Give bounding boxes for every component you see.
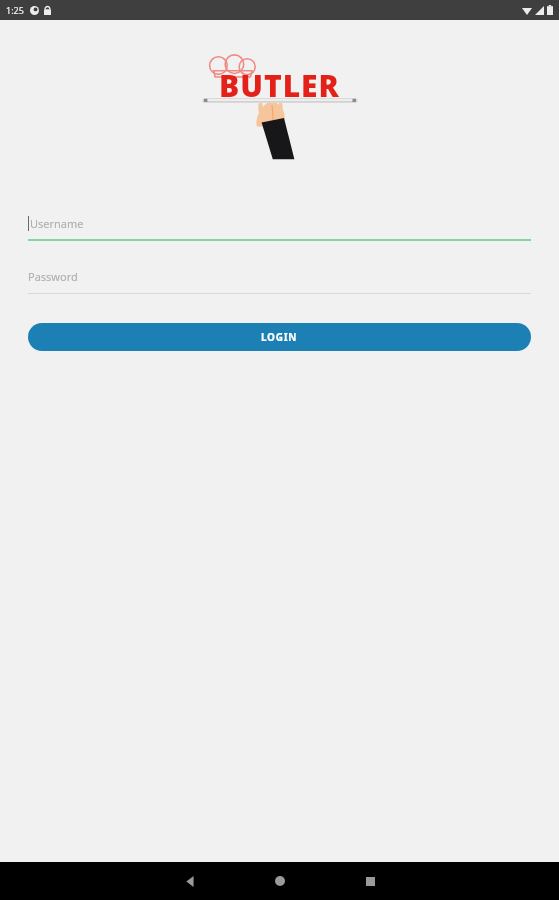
button[interactable]: Recent apps bbox=[341, 862, 399, 900]
button[interactable]: Password bbox=[28, 269, 531, 294]
staticText: Username bbox=[30, 216, 84, 231]
staticText: BUTLER bbox=[219, 65, 340, 106]
button[interactable]: Back bbox=[161, 862, 219, 900]
button[interactable]: Home bbox=[251, 862, 309, 900]
staticText: LOGIN bbox=[261, 330, 298, 344]
staticText: 1:25 bbox=[6, 4, 24, 16]
staticText: Password bbox=[28, 269, 78, 284]
button[interactable]: LOGIN bbox=[28, 323, 531, 351]
button[interactable]: Username bbox=[28, 216, 531, 241]
